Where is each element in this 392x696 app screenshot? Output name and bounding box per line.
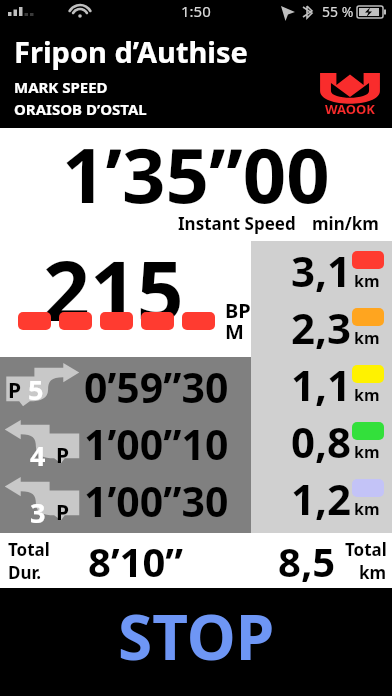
staticText: Instant Speed [178, 212, 296, 235]
staticText: 215 [43, 233, 184, 345]
staticText: Total [345, 538, 387, 561]
staticText: Total [8, 538, 50, 561]
staticText: WAOOK [325, 100, 375, 118]
staticText: BPM [225, 297, 269, 345]
staticText: STOP [118, 594, 275, 678]
staticText: km [359, 561, 387, 584]
staticText: P [8, 376, 22, 405]
staticText: P [56, 441, 70, 470]
staticText: km [354, 270, 380, 292]
staticText: 5 [28, 371, 44, 408]
button[interactable]: P [0, 359, 251, 412]
staticText: min/km [312, 212, 379, 235]
staticText: Dur. [8, 561, 42, 584]
staticText: 0’59”30 [84, 359, 229, 412]
staticText: 4 [30, 437, 46, 474]
staticText: 8,5 [278, 534, 336, 588]
staticText: 3 [30, 494, 46, 531]
staticText: P [56, 498, 70, 527]
staticText: 1,2 [263, 470, 351, 527]
button[interactable]: WAOOK logo [316, 68, 384, 118]
staticText: 8’10” [88, 534, 184, 588]
staticText: MARK SPEED [14, 77, 108, 97]
staticText: km [354, 441, 380, 463]
staticText: 0,8 [263, 413, 351, 470]
button[interactable]: 3 [0, 473, 251, 526]
staticText: 1:50 [181, 1, 211, 21]
staticText: 1’00”30 [84, 473, 229, 526]
staticText: 55 % [322, 2, 354, 21]
button[interactable]: STOP [0, 588, 392, 696]
staticText: ORAISOB D’OSTAL [14, 99, 147, 119]
staticText: 1’35”00 [62, 122, 330, 226]
staticText: km [354, 327, 380, 349]
staticText: 2,3 [263, 299, 351, 356]
staticText: km [354, 384, 380, 406]
staticText: 1’00”10 [84, 416, 229, 469]
staticText: 3,1 [263, 242, 351, 299]
staticText: Fripon d’Authise [14, 32, 248, 71]
staticText: 1,1 [263, 356, 351, 413]
button[interactable]: 4 [0, 416, 251, 469]
staticText: km [354, 498, 380, 520]
